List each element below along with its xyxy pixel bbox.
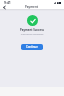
button[interactable]: Back bbox=[2, 5, 7, 9]
staticText: Continue bbox=[26, 45, 38, 49]
button[interactable]: Continue bbox=[21, 44, 43, 50]
staticText: 9:41 bbox=[4, 0, 11, 5]
staticText: Payment bbox=[25, 5, 39, 9]
staticText: Payment Success bbox=[0, 28, 64, 32]
staticText: Transaction completed bbox=[0, 33, 64, 36]
